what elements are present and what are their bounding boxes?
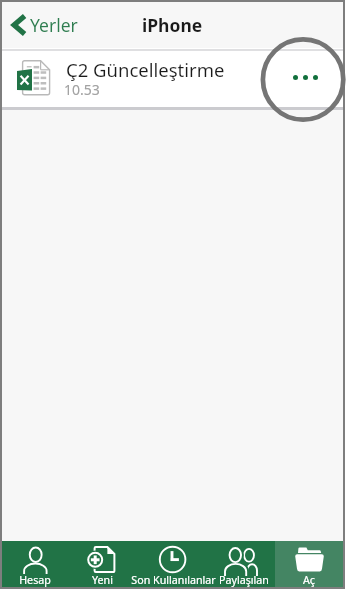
button[interactable]	[136, 541, 210, 587]
staticText: 10.53	[64, 80, 100, 99]
button[interactable]	[275, 541, 343, 587]
staticText: Yerler	[30, 13, 78, 37]
staticText: Ç2 Güncelleştirme	[66, 57, 225, 82]
button[interactable]: More options	[291, 73, 320, 82]
staticText: Paylaşılan	[219, 573, 269, 588]
staticText: Hesap	[19, 573, 51, 588]
button[interactable]	[210, 541, 275, 587]
staticText: Aç	[303, 573, 315, 588]
staticText: iPhone	[142, 13, 203, 37]
button[interactable]	[68, 541, 136, 587]
staticText: Yeni	[92, 573, 113, 588]
button[interactable]: Yerler	[9, 11, 80, 39]
staticText: Son Kullanılanlar	[131, 573, 216, 588]
button[interactable]: Ç2 Güncelleştirme	[2, 48, 343, 109]
button[interactable]	[2, 541, 68, 587]
